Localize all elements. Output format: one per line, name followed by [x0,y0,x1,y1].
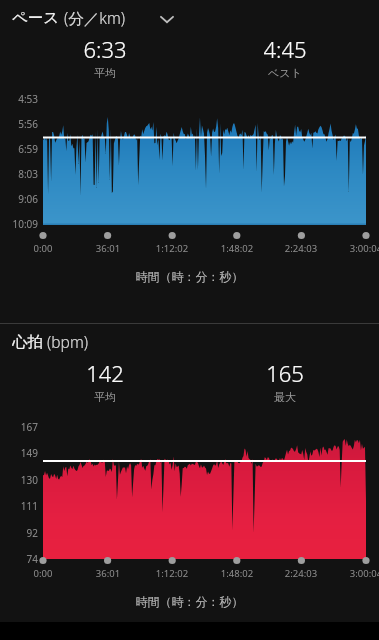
staticText: 9:06 [0,192,38,206]
staticText: 6:59 [0,142,38,156]
staticText: 36:01 [78,567,138,581]
staticText: 8:03 [0,167,38,181]
staticText: 0:00 [13,242,73,256]
staticText: 165 [225,358,345,388]
staticText: 5:56 [0,117,38,131]
staticText: 2:24:03 [271,242,331,256]
staticText: 0:00 [13,567,73,581]
staticText: (分／km) [60,7,126,28]
button[interactable]: メトリクスを選択 [152,4,182,34]
button[interactable]: 165 [225,358,345,402]
staticText: 111 [0,499,38,513]
staticText: 2:24:03 [271,567,331,581]
staticText: 74 [0,552,38,566]
staticText: 時間（時：分：秒） [0,269,379,284]
staticText: 149 [0,446,38,460]
staticText: 10:09 [0,217,38,231]
staticText: 130 [0,473,38,487]
staticText: 6:33 [45,34,165,64]
staticText: 時間（時：分：秒） [0,594,379,609]
staticText: 1:48:02 [207,242,267,256]
staticText: 1:48:02 [207,567,267,581]
staticText: 3:00:04 [336,242,379,256]
button[interactable]: 4:45 [225,34,345,78]
staticText: 1:12:02 [142,242,202,256]
staticText: 3:00:04 [336,567,379,581]
button[interactable]: ペース [10,5,128,30]
button[interactable]: 142 [45,358,165,402]
staticText: 4:45 [225,34,345,64]
staticText: 1:12:02 [142,567,202,581]
button[interactable]: 6:33 [45,34,165,78]
button[interactable]: 心拍 [10,329,91,354]
staticText: 36:01 [78,242,138,256]
staticText: 92 [0,526,38,540]
staticText: 167 [0,420,38,434]
staticText: 4:53 [0,92,38,106]
staticText: 心拍 [12,332,43,352]
staticText: (bpm) [43,331,89,352]
staticText: 142 [45,358,165,388]
staticText: ペース [12,8,60,28]
staticText: 最大 [225,390,345,402]
staticText: ベスト [225,66,345,78]
staticText: 平均 [45,66,165,78]
staticText: 平均 [45,390,165,402]
